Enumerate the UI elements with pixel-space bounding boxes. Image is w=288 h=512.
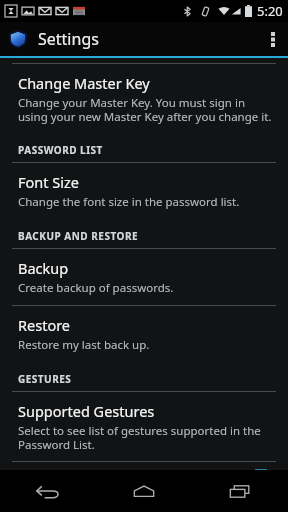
staticText: Change Master Key: [18, 73, 150, 93]
staticText: Restore: [18, 315, 71, 335]
button[interactable]: Font Size: [0, 163, 288, 219]
staticText: GESTURES: [18, 372, 72, 386]
staticText: Change your Master Key. You must sign in…: [18, 95, 272, 124]
staticText: Change the font size in the password lis…: [18, 194, 240, 210]
staticText: Font Size: [18, 172, 79, 192]
button[interactable]: Restore: [0, 306, 288, 362]
staticText: BACKUP AND RESTORE: [18, 229, 139, 243]
button[interactable]: Enable Gestures: [0, 462, 288, 470]
button[interactable]: Back: [0, 470, 96, 512]
button[interactable]: Recent apps: [192, 470, 288, 512]
staticText: PASSWORD LIST: [18, 143, 103, 157]
staticText: Restore my last back up.: [18, 337, 150, 353]
staticText: Create backup of passwords.: [18, 280, 174, 296]
button[interactable]: Backup: [0, 249, 288, 305]
button[interactable]: Change Master Key: [0, 64, 288, 133]
staticText: Select to see list of gestures supported…: [18, 423, 261, 452]
staticText: Supported Gestures: [18, 401, 155, 421]
staticText: 5:20: [257, 2, 283, 20]
button[interactable]: Supported Gestures: [0, 392, 288, 461]
staticText: Settings: [38, 28, 99, 50]
button[interactable]: Home: [96, 470, 192, 512]
staticText: Backup: [18, 258, 69, 278]
button[interactable]: More options: [258, 22, 288, 56]
